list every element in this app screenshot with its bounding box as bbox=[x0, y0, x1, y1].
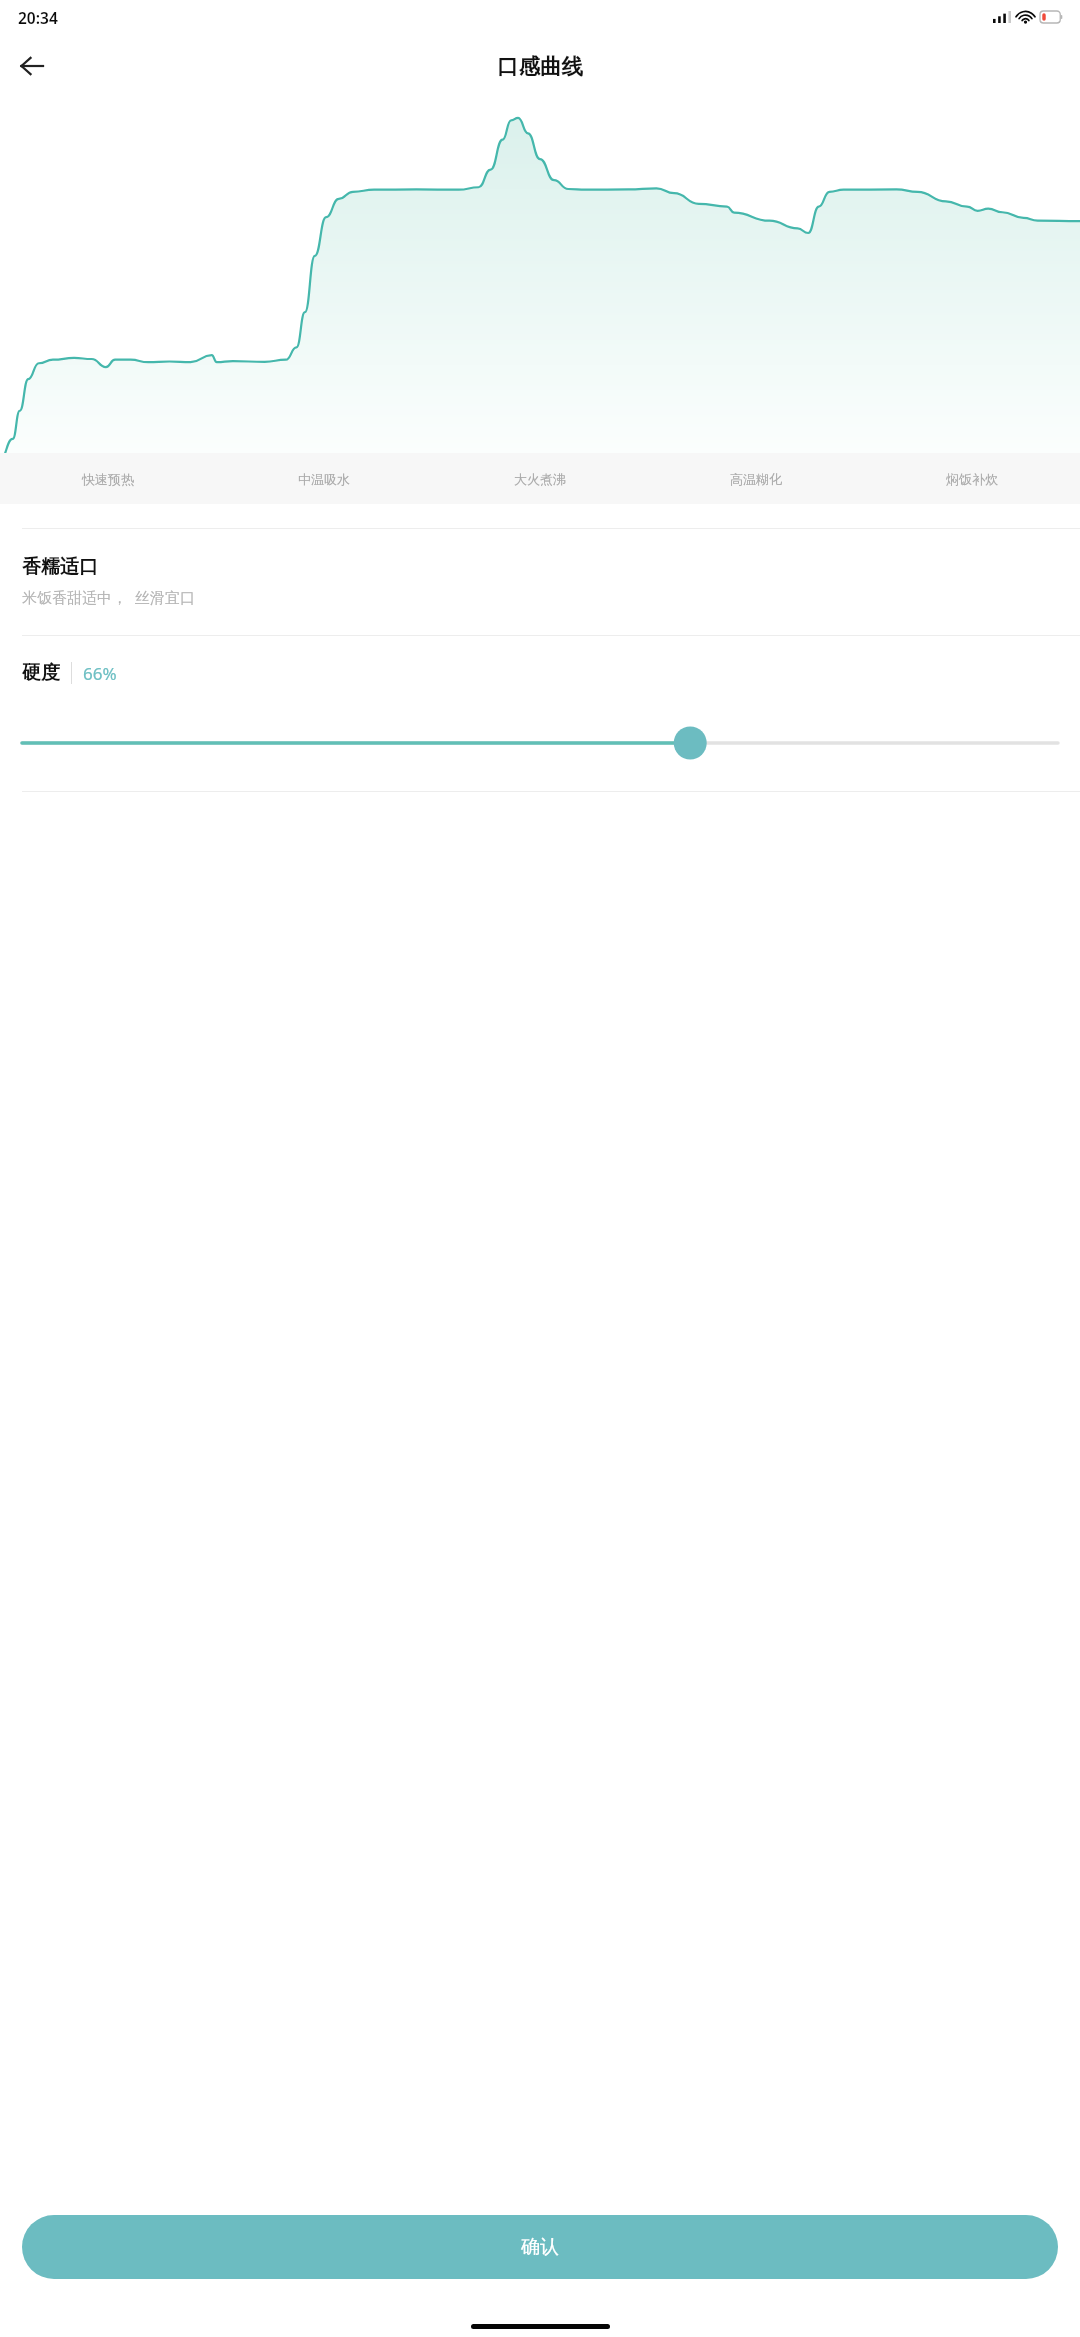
staticText: 焖饭补炊 bbox=[946, 471, 998, 487]
button[interactable]: 高温糊化 bbox=[730, 471, 782, 487]
button[interactable]: Back bbox=[10, 44, 54, 88]
staticText: 中温吸水 bbox=[298, 471, 350, 487]
button[interactable]: 香糯适口 bbox=[0, 529, 1080, 635]
staticText: 米饭香甜适中， 丝滑宜口 bbox=[22, 587, 195, 607]
staticText: 快速预热 bbox=[82, 471, 134, 487]
button[interactable]: 确认 bbox=[22, 2215, 1058, 2279]
staticText: 香糯适口 bbox=[22, 555, 98, 579]
staticText: 大火煮沸 bbox=[514, 471, 566, 487]
button[interactable]: 中温吸水 bbox=[298, 471, 350, 487]
staticText: 确认 bbox=[521, 2235, 559, 2259]
staticText: 口感曲线 bbox=[497, 53, 583, 80]
button[interactable]: 大火煮沸 bbox=[514, 471, 566, 487]
staticText: 66% bbox=[83, 662, 117, 685]
button[interactable]: Hardness slider bbox=[0, 721, 1080, 765]
button[interactable]: 焖饭补炊 bbox=[946, 471, 998, 487]
staticText: 高温糊化 bbox=[730, 471, 782, 487]
button[interactable]: 快速预热 bbox=[82, 471, 134, 487]
staticText: 硬度 bbox=[22, 661, 60, 685]
staticText: 20:34 bbox=[18, 7, 58, 28]
